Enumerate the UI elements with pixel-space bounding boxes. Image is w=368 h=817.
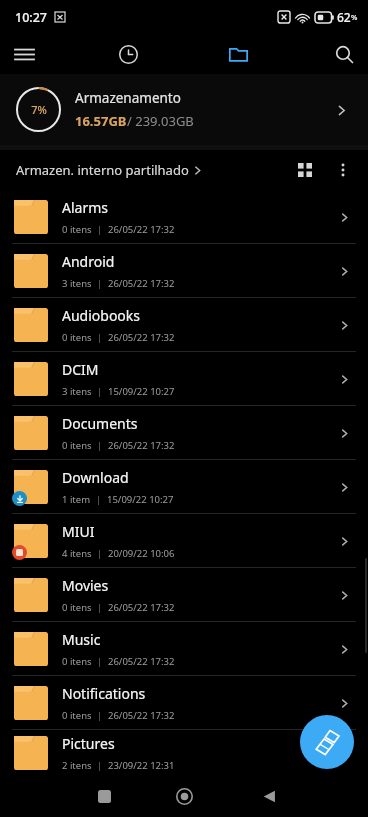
staticText: Documents bbox=[62, 414, 138, 433]
staticText: 0 itens bbox=[62, 439, 92, 452]
staticText: 15/09/22 10:27 bbox=[107, 493, 174, 506]
button[interactable]: Notifications bbox=[0, 676, 368, 729]
staticText: 26/05/22 17:32 bbox=[108, 439, 175, 452]
button[interactable]: Menu bbox=[4, 34, 44, 74]
staticText: Movies bbox=[62, 576, 109, 595]
staticText: Pictures bbox=[62, 734, 115, 753]
staticText: 3 itens bbox=[62, 277, 92, 290]
staticText: 4 itens bbox=[62, 547, 92, 560]
staticText: % bbox=[351, 12, 358, 22]
button[interactable]: Audiobooks bbox=[0, 298, 368, 351]
staticText: 10:27 bbox=[15, 9, 48, 26]
staticText: DCIM bbox=[62, 360, 99, 379]
staticText: 15/09/22 10:27 bbox=[108, 385, 175, 398]
staticText: / 239.03GB bbox=[127, 112, 194, 130]
staticText: 1 item bbox=[62, 493, 91, 506]
staticText: | bbox=[92, 547, 108, 560]
button[interactable]: Documents bbox=[0, 406, 368, 459]
button[interactable]: Recent apps bbox=[83, 775, 125, 817]
staticText: 26/05/22 17:32 bbox=[108, 655, 175, 668]
button[interactable]: Clean up storage bbox=[300, 715, 354, 769]
staticText: 3 itens bbox=[62, 385, 92, 398]
button[interactable]: Android bbox=[0, 244, 368, 297]
button[interactable]: Alarms bbox=[0, 190, 368, 243]
staticText: 26/05/22 17:32 bbox=[108, 709, 175, 722]
button[interactable]: More options bbox=[324, 151, 362, 189]
staticText: | bbox=[92, 331, 108, 344]
staticText: | bbox=[92, 223, 108, 236]
staticText: | bbox=[92, 385, 108, 398]
staticText: | bbox=[92, 655, 108, 668]
button[interactable]: Pictures bbox=[0, 730, 368, 775]
staticText: Download bbox=[62, 468, 129, 487]
staticText: Armazen. interno partilhado bbox=[16, 161, 189, 179]
staticText: 0 itens bbox=[62, 331, 92, 344]
staticText: 16.57GB bbox=[75, 112, 127, 130]
staticText: 23/09/22 12:31 bbox=[108, 759, 175, 772]
staticText: | bbox=[92, 277, 108, 290]
staticText: | bbox=[92, 439, 108, 452]
staticText: Armazenamento bbox=[75, 89, 181, 107]
staticText: 0 itens bbox=[62, 655, 92, 668]
button[interactable]: 7% bbox=[0, 74, 368, 145]
staticText: 7% bbox=[31, 102, 47, 117]
staticText: 26/05/22 17:32 bbox=[108, 277, 175, 290]
staticText: Alarms bbox=[62, 198, 108, 217]
button[interactable]: Recent bbox=[108, 34, 148, 74]
button[interactable]: Armazen. interno partilhado bbox=[14, 155, 205, 185]
button[interactable]: Folders bbox=[218, 34, 258, 74]
button[interactable]: Download bbox=[0, 460, 368, 513]
button[interactable]: DCIM bbox=[0, 352, 368, 405]
staticText: 62 bbox=[337, 9, 351, 25]
button[interactable]: MIUI bbox=[0, 514, 368, 567]
staticText: 26/05/22 17:32 bbox=[108, 331, 175, 344]
staticText: | bbox=[92, 709, 108, 722]
staticText: Music bbox=[62, 630, 101, 649]
staticText: 2 itens bbox=[62, 759, 92, 772]
button[interactable]: Back bbox=[248, 775, 290, 817]
button[interactable]: Search bbox=[324, 34, 364, 74]
staticText: Notifications bbox=[62, 684, 146, 703]
button[interactable]: Grid view bbox=[286, 151, 324, 189]
staticText: 0 itens bbox=[62, 601, 92, 614]
staticText: MIUI bbox=[62, 522, 95, 541]
staticText: 26/05/22 17:32 bbox=[108, 223, 175, 236]
staticText: Audiobooks bbox=[62, 306, 141, 325]
staticText: | bbox=[91, 493, 107, 506]
button[interactable]: Music bbox=[0, 622, 368, 675]
staticText: | bbox=[92, 601, 108, 614]
staticText: Android bbox=[62, 252, 115, 271]
staticText: 20/09/22 10:06 bbox=[108, 547, 175, 560]
staticText: | bbox=[92, 759, 108, 772]
staticText: 26/05/22 17:32 bbox=[108, 601, 175, 614]
staticText: 0 itens bbox=[62, 709, 92, 722]
staticText: 0 itens bbox=[62, 223, 92, 236]
button[interactable]: Home bbox=[163, 775, 205, 817]
button[interactable]: Movies bbox=[0, 568, 368, 621]
